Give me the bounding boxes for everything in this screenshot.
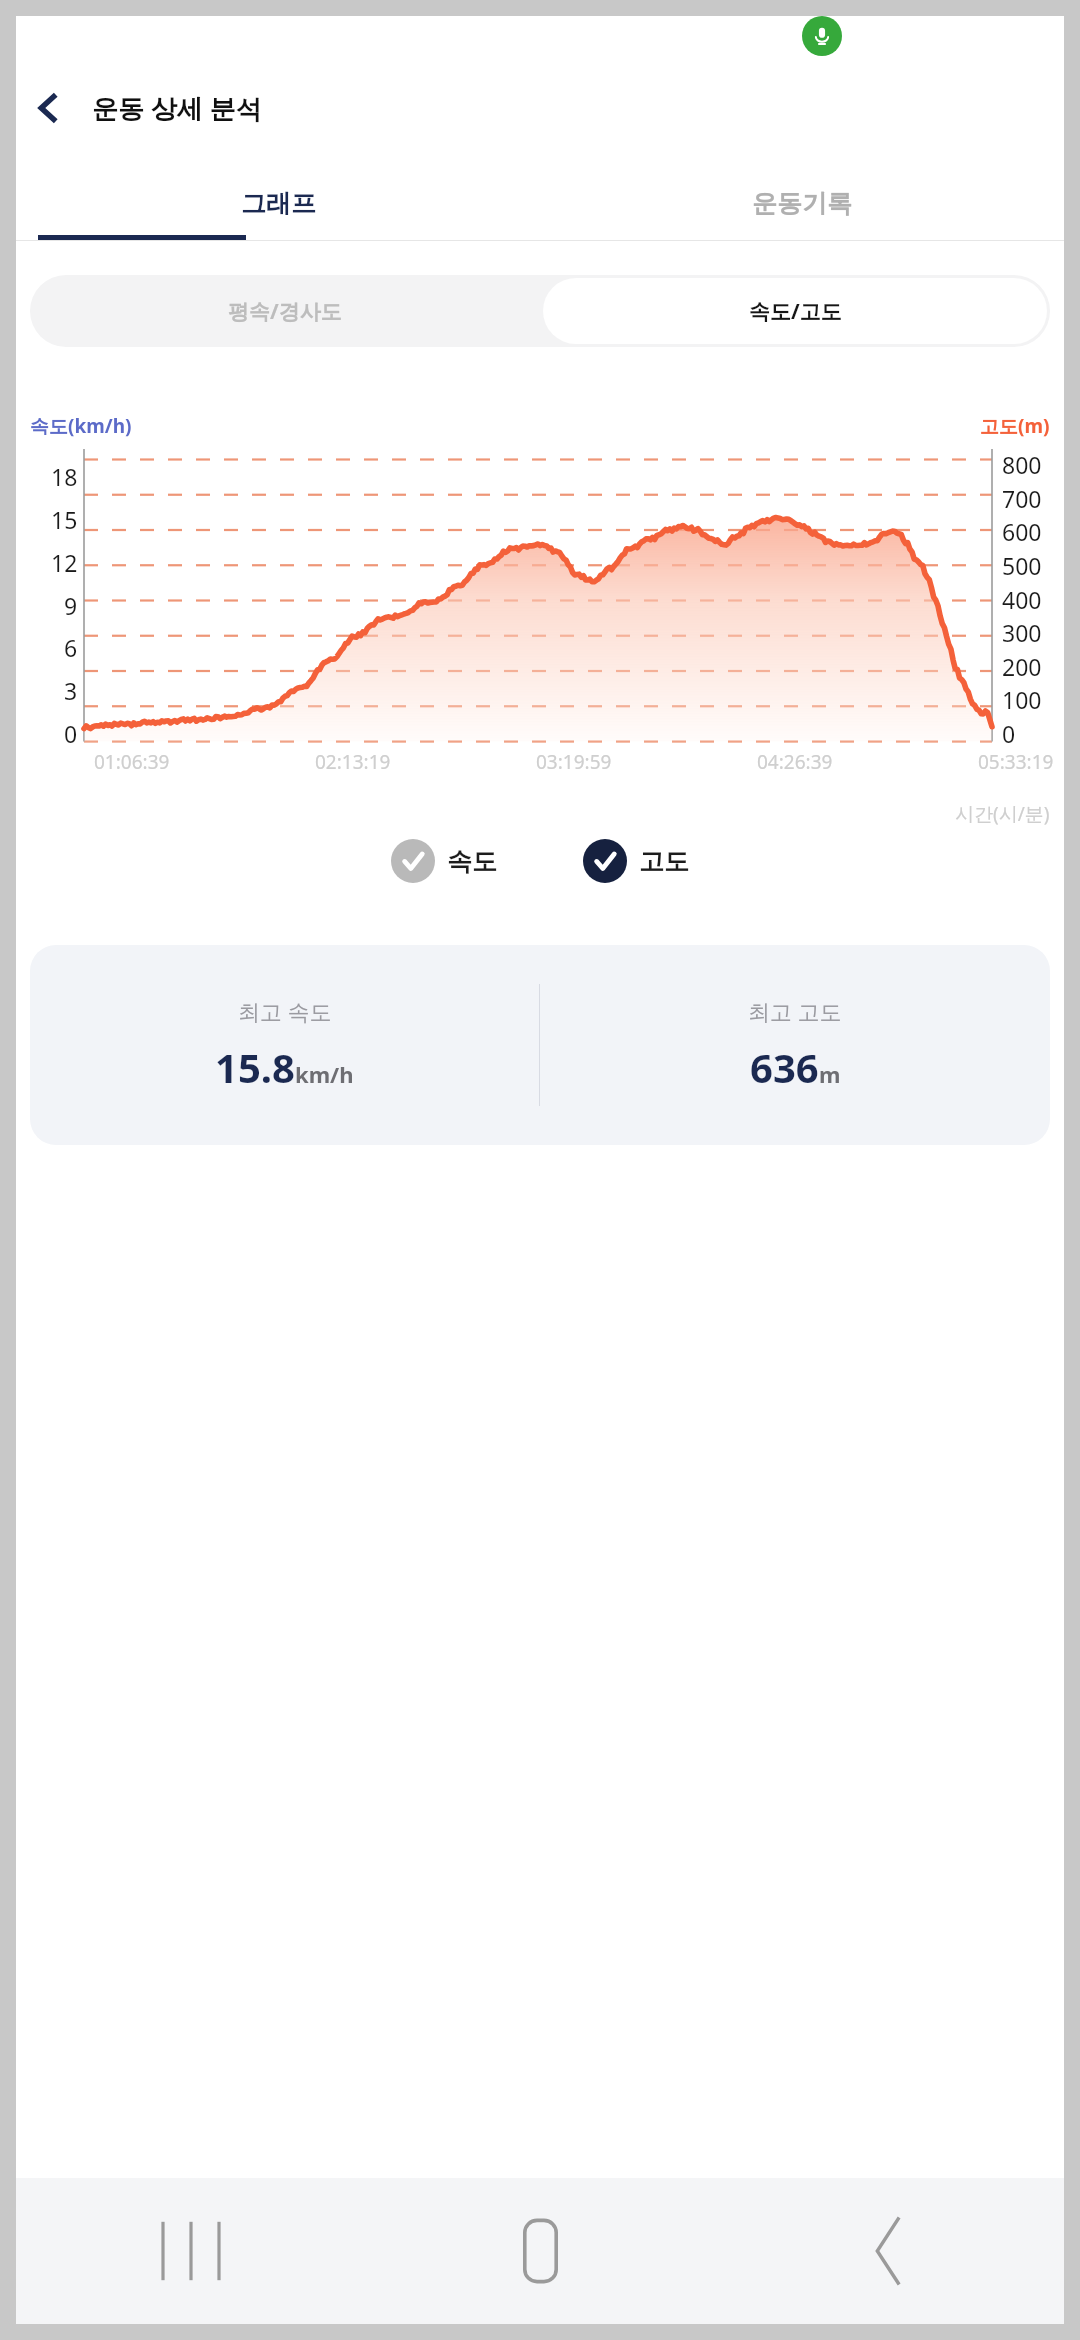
staticText: 700 [1002, 483, 1042, 514]
button[interactable]: 속도/고도 [543, 278, 1047, 344]
staticText: 그래프 [241, 188, 316, 219]
staticText: 운동 상세 분석 [92, 90, 262, 126]
staticText: 03:19:59 [536, 749, 612, 775]
staticText: 500 [1002, 550, 1042, 581]
staticText: 3 [64, 675, 78, 706]
staticText: 속도(km/h) [30, 413, 132, 439]
staticText: 800 [1002, 449, 1042, 480]
staticText: 18 [51, 461, 78, 492]
staticText: 02:13:19 [315, 749, 391, 775]
staticText: 05:33:19 [978, 749, 1054, 775]
staticText: 01:06:39 [94, 749, 170, 775]
button[interactable]: 그래프 [16, 166, 540, 240]
staticText: 04:26:39 [757, 749, 833, 775]
button[interactable]: 평속/경사도 [30, 275, 540, 347]
staticText: 200 [1002, 651, 1042, 682]
staticText: m [819, 1059, 841, 1089]
button[interactable]: 고도 [583, 839, 689, 883]
staticText: 0 [64, 718, 78, 749]
button[interactable]: Voice input [802, 16, 842, 56]
staticText: 0 [1002, 718, 1016, 749]
staticText: 최고 속도 [238, 996, 332, 1026]
staticText: 최고 고도 [748, 996, 842, 1026]
button[interactable]: 속도 [391, 839, 497, 883]
staticText: km/h [295, 1059, 354, 1089]
staticText: 300 [1002, 617, 1042, 648]
staticText: 고도(m) [980, 413, 1050, 439]
staticText: 속도/고도 [749, 297, 842, 326]
staticText: 9 [64, 590, 78, 621]
staticText: 평속/경사도 [228, 297, 342, 326]
staticText: 6 [64, 632, 78, 663]
staticText: 15 [51, 504, 78, 535]
staticText: 100 [1002, 684, 1042, 715]
button[interactable]: 최고 속도 [30, 945, 539, 1145]
staticText: 시간(시/분) [955, 801, 1050, 827]
staticText: 15.8 [215, 1040, 295, 1094]
staticText: 운동기록 [752, 188, 852, 219]
button[interactable]: 최고 고도 [540, 945, 1050, 1145]
button[interactable]: Back [715, 2178, 1064, 2324]
staticText: 600 [1002, 516, 1042, 547]
staticText: 고도 [639, 846, 689, 877]
staticText: 636 [750, 1040, 819, 1094]
staticText: 400 [1002, 584, 1042, 615]
staticText: 속도 [447, 846, 497, 877]
button[interactable]: Home [366, 2178, 715, 2324]
staticText: 12 [51, 547, 78, 578]
button[interactable]: Recents [16, 2178, 366, 2324]
button[interactable]: 운동기록 [540, 166, 1064, 240]
button[interactable]: Back [16, 76, 80, 140]
